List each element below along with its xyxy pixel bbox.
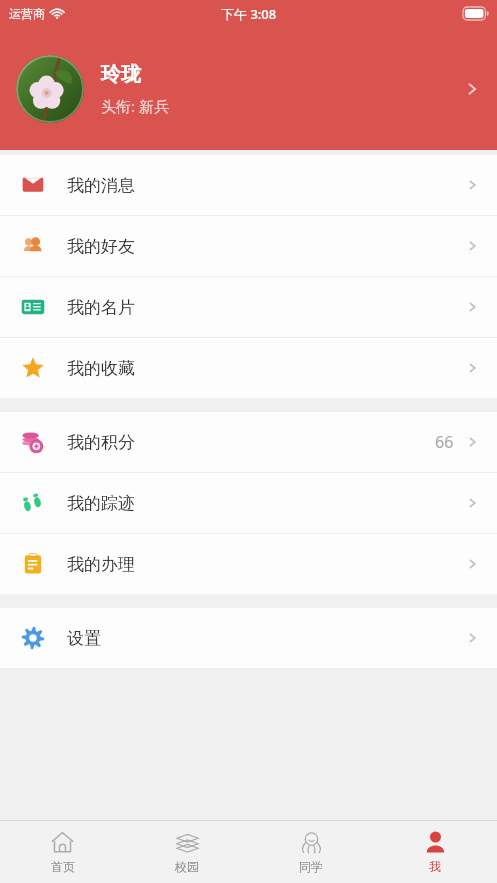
button[interactable]: 首页 (0, 821, 125, 883)
button[interactable]: 我的消息 (0, 155, 497, 215)
button[interactable]: 我 (373, 821, 497, 883)
button[interactable]: 我的好友 (0, 216, 497, 276)
staticText: 66 (435, 431, 454, 453)
button[interactable]: 我的收藏 (0, 338, 497, 398)
button[interactable]: 同学 (249, 821, 373, 883)
staticText: 校园 (175, 859, 199, 874)
button[interactable]: 我的积分 (0, 412, 497, 472)
staticText: 我的好友 (67, 236, 463, 257)
staticText: 头衔: 新兵 (101, 96, 169, 116)
staticText: 玲珑 (101, 62, 141, 87)
staticText: 我的名片 (67, 297, 463, 318)
button[interactable]: 我的踪迹 (0, 473, 497, 533)
staticText: 我的积分 (67, 432, 435, 453)
button[interactable]: 我的名片 (0, 277, 497, 337)
other: 头像 (16, 55, 84, 123)
button[interactable]: 设置 (0, 608, 497, 668)
staticText: 设置 (67, 628, 463, 649)
staticText: 我的办理 (67, 554, 463, 575)
staticText: 我 (429, 859, 441, 874)
staticText: 我的消息 (67, 175, 463, 196)
staticText: 下午 3:08 (221, 5, 277, 23)
other: 个人资料 (461, 78, 483, 100)
button[interactable]: 我的办理 (0, 534, 497, 594)
staticText: 同学 (299, 859, 323, 874)
button[interactable]: 头像 (0, 27, 497, 150)
staticText: 运营商 (9, 6, 45, 21)
staticText: 首页 (51, 859, 75, 874)
button[interactable]: 校园 (125, 821, 249, 883)
staticText: 我的收藏 (67, 358, 463, 379)
staticText: 我的踪迹 (67, 493, 463, 514)
